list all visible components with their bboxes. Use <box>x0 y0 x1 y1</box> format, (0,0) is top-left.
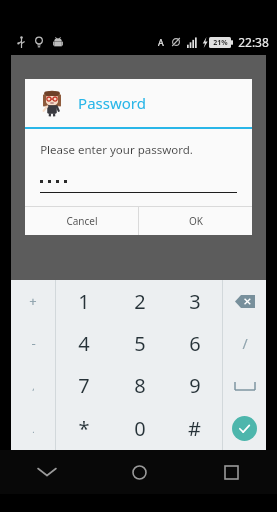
staticText: 8 <box>134 372 146 399</box>
staticText: , <box>32 380 35 392</box>
staticText: 22:38 <box>238 34 269 50</box>
button[interactable]: 5 <box>112 322 167 364</box>
staticText: # <box>188 415 201 442</box>
button[interactable]: Cancel <box>25 207 138 235</box>
staticText: 4 <box>78 330 90 357</box>
button[interactable]: - <box>11 322 55 364</box>
button[interactable]: 4 <box>56 322 112 364</box>
button[interactable]: + <box>11 280 55 322</box>
staticText: * <box>78 415 90 442</box>
button[interactable]: 7 <box>56 364 112 407</box>
staticText: 3 <box>189 288 201 315</box>
staticText: 2 <box>134 288 146 315</box>
staticText: 0 <box>134 415 146 442</box>
staticText: 7 <box>78 372 90 399</box>
button[interactable]: Delete <box>223 280 266 322</box>
button[interactable]: Home <box>93 450 185 494</box>
staticText: . <box>32 423 35 435</box>
staticText: - <box>31 334 36 352</box>
button[interactable]: 1 <box>56 280 112 322</box>
staticText: 6 <box>189 330 201 357</box>
staticText: A <box>158 36 164 48</box>
staticText: 21% <box>213 38 228 48</box>
button[interactable]: 9 <box>167 364 222 407</box>
button[interactable]: Recent apps <box>185 450 277 494</box>
staticText: Password <box>78 93 146 113</box>
button[interactable]: 0 <box>112 407 167 450</box>
staticText: 9 <box>189 372 201 399</box>
button[interactable]: # <box>167 407 222 450</box>
button[interactable]: Back <box>0 450 93 494</box>
button[interactable]: 8 <box>112 364 167 407</box>
staticText: OK <box>189 214 203 228</box>
button[interactable]: OK <box>139 207 252 235</box>
button[interactable]: Enter <box>223 407 266 450</box>
staticText: 1 <box>78 288 90 315</box>
staticText: + <box>29 292 37 310</box>
button[interactable]: * <box>56 407 112 450</box>
button[interactable]: 3 <box>167 280 222 322</box>
button[interactable]: Space <box>223 364 266 407</box>
staticText: / <box>242 334 248 353</box>
button[interactable]: 6 <box>167 322 222 364</box>
staticText: Cancel <box>66 214 98 228</box>
staticText: Please enter your password. <box>40 142 193 158</box>
button[interactable]: 2 <box>112 280 167 322</box>
staticText: 5 <box>134 330 146 357</box>
button[interactable]: / <box>223 322 266 364</box>
